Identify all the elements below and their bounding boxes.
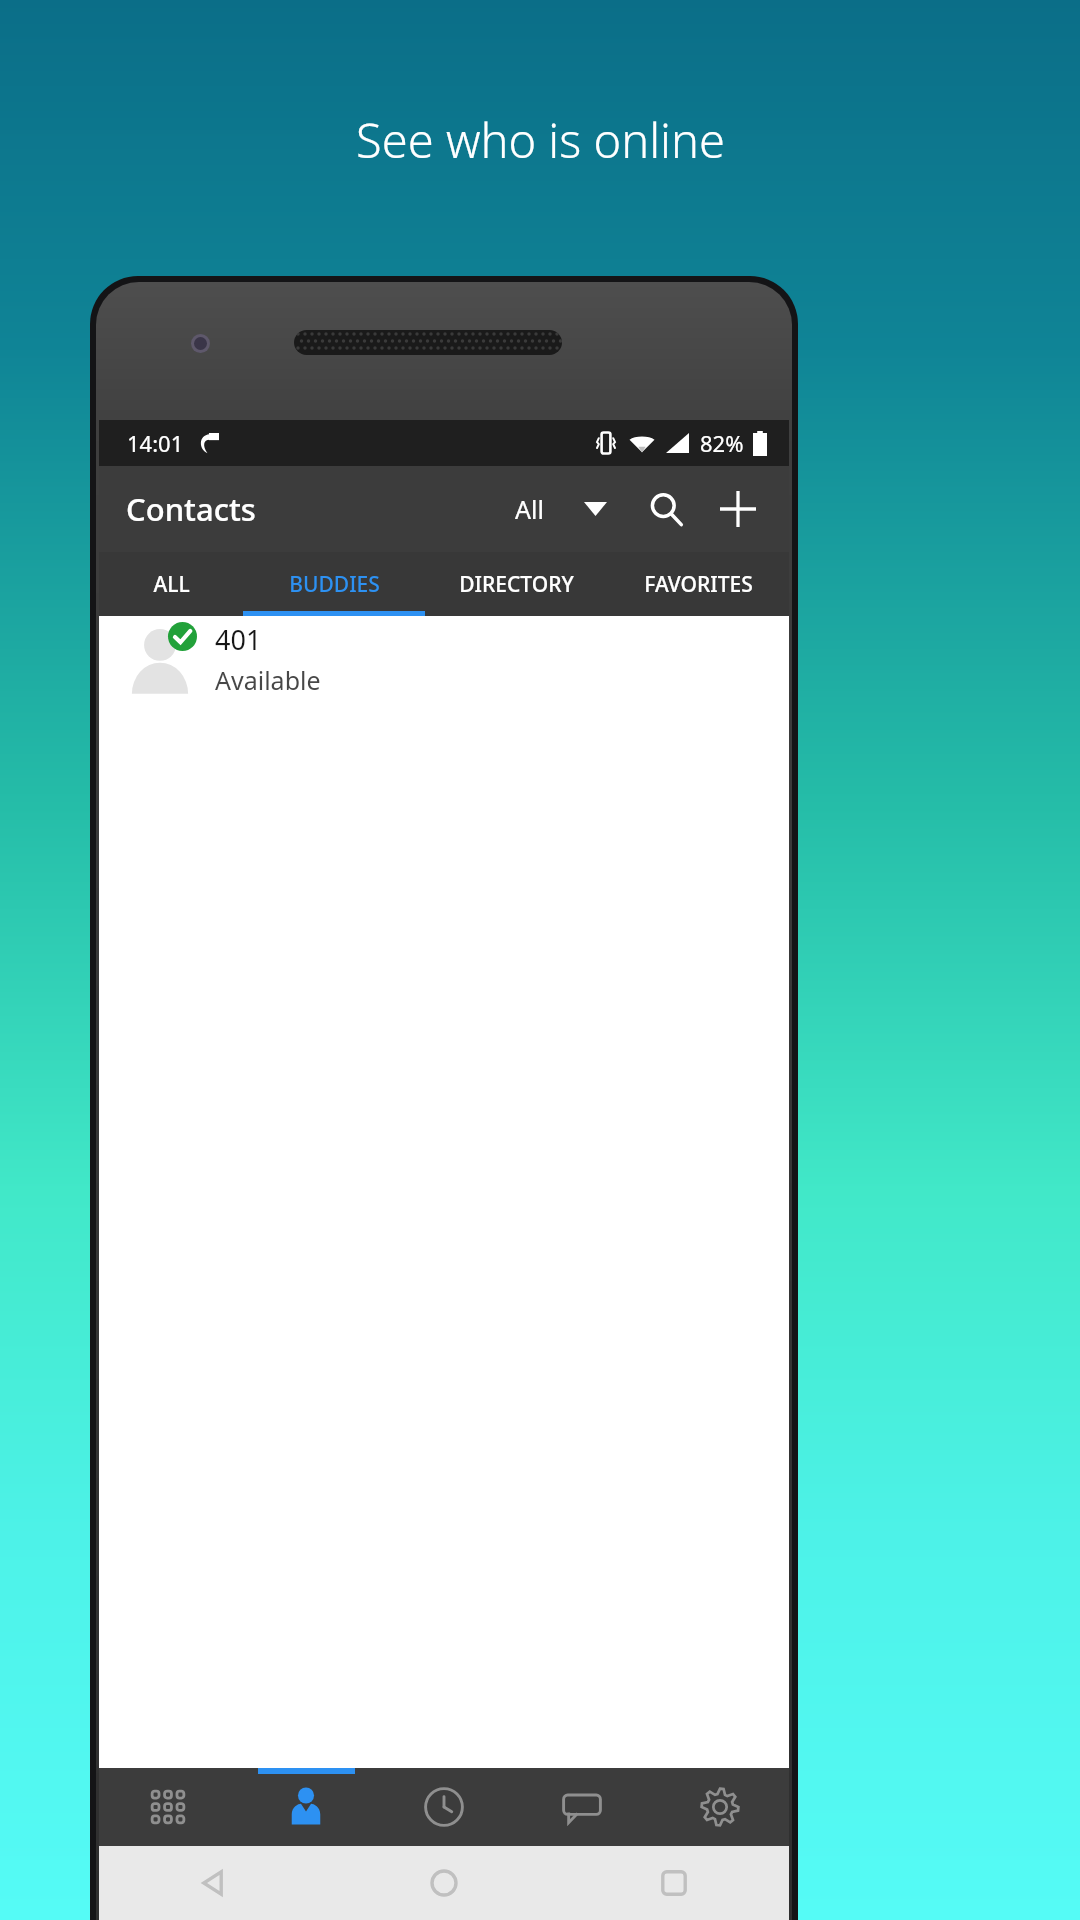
staticText: 401: [215, 621, 262, 658]
button[interactable]: Contacts: [237, 1768, 375, 1846]
button[interactable]: Add contact: [707, 478, 769, 540]
staticText: ALL: [153, 570, 190, 599]
staticText: DIRECTORY: [459, 570, 574, 599]
button[interactable]: FAVORITES: [607, 552, 789, 616]
button[interactable]: Messages: [513, 1768, 651, 1846]
button[interactable]: 401: [99, 616, 789, 702]
staticText: 82%: [700, 428, 744, 458]
staticText: FAVORITES: [644, 570, 753, 599]
staticText: 14:01: [127, 428, 184, 458]
staticText: BUDDIES: [289, 570, 380, 599]
button[interactable]: ALL: [99, 552, 243, 616]
button[interactable]: Recents: [559, 1846, 789, 1920]
staticText: All: [515, 492, 544, 526]
button[interactable]: BUDDIES: [243, 552, 425, 616]
button[interactable]: Settings: [651, 1768, 789, 1846]
button[interactable]: DIRECTORY: [425, 552, 607, 616]
staticText: Available: [215, 663, 321, 697]
button[interactable]: All: [505, 482, 617, 536]
button[interactable]: Recents: [375, 1768, 513, 1846]
staticText: See who is online: [356, 108, 725, 172]
button[interactable]: Back: [99, 1846, 329, 1920]
staticText: Contacts: [126, 488, 256, 530]
button[interactable]: Search: [635, 478, 697, 540]
button[interactable]: Keypad: [99, 1768, 237, 1846]
button[interactable]: Home: [329, 1846, 559, 1920]
